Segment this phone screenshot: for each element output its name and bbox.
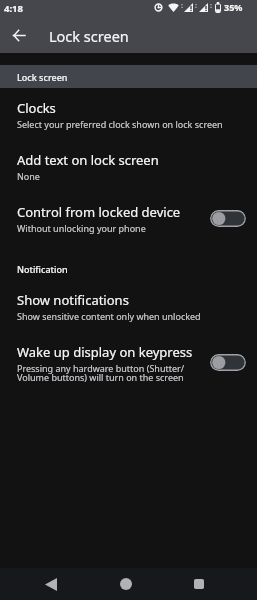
button[interactable]: Home [103,569,148,599]
staticText: Add text on lock screen [17,151,159,169]
button[interactable]: Add text on lock screen [0,149,257,201]
staticText: 4:18 [4,2,23,15]
staticText: Lock screen [17,71,68,83]
staticText: Clocks [17,99,56,117]
staticText: Lock screen [49,26,129,46]
button[interactable]: Back [5,21,33,49]
staticText: Notification [17,263,68,275]
staticText: Show sensitive content only when unlocke… [17,310,201,322]
staticText: 35% [224,1,243,13]
button[interactable]: Recents [176,569,221,599]
button[interactable]: Back [29,569,73,599]
staticText: Without unlocking your phone [17,222,146,234]
staticText: Control from locked device [17,203,181,221]
staticText: None [17,170,40,182]
button[interactable]: Toggle [210,354,246,371]
button[interactable]: Wake up display on keypress [0,341,257,403]
staticText: Show notifications [17,291,129,309]
button[interactable]: Show notifications [0,289,257,341]
staticText: Wake up display on keypress [17,343,193,361]
button[interactable]: Toggle [210,210,246,227]
staticText: Pressing any hardware button (Shutter/ V… [17,362,185,384]
staticText: Select your preferred clock shown on loc… [17,118,223,130]
button[interactable]: Control from locked device [0,201,257,253]
button[interactable]: Clocks [0,97,257,149]
